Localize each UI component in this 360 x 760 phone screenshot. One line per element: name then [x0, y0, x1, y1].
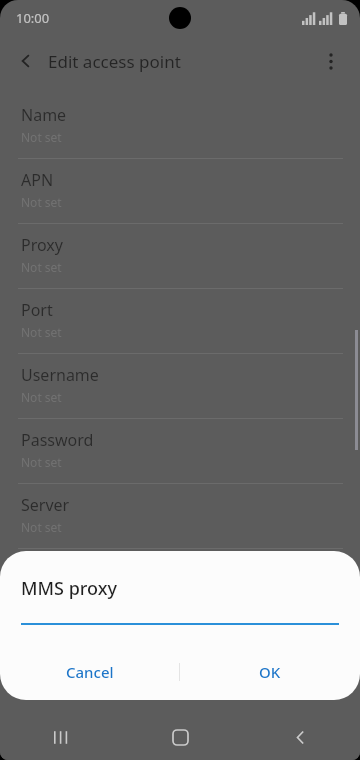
staticText: MMS proxy: [21, 576, 117, 601]
staticText: Server: [21, 494, 70, 516]
button[interactable]: Home: [120, 714, 240, 760]
button[interactable]: Password: [0, 419, 360, 484]
button[interactable]: OK: [180, 650, 360, 694]
button[interactable]: Name: [0, 94, 360, 159]
button[interactable]: Cancel: [0, 650, 179, 694]
staticText: Not set: [21, 389, 62, 405]
staticText: Not set: [21, 584, 62, 600]
staticText: Port: [21, 299, 53, 321]
button[interactable]: Username: [0, 354, 360, 419]
staticText: Not set: [21, 194, 62, 210]
button[interactable]: Proxy: [0, 224, 360, 289]
staticText: MMS port: [21, 624, 95, 646]
staticText: Username: [21, 364, 99, 386]
button[interactable]: Back: [240, 714, 360, 760]
button[interactable]: Navigate up: [9, 44, 43, 78]
staticText: Not set: [21, 454, 62, 470]
staticText: Not set: [21, 324, 62, 340]
button[interactable]: APN: [0, 159, 360, 224]
staticText: 10:00: [16, 9, 50, 27]
staticText: APN: [21, 169, 54, 191]
staticText: Proxy: [21, 234, 63, 256]
button[interactable]: More options: [316, 46, 346, 76]
button[interactable]: Recent apps: [0, 714, 120, 760]
button[interactable]: Port: [0, 289, 360, 354]
button[interactable]: MMS proxy: [0, 549, 360, 614]
staticText: Password: [21, 429, 94, 451]
staticText: Not set: [21, 129, 62, 145]
staticText: Not set: [21, 259, 62, 275]
button[interactable]: Server: [0, 484, 360, 549]
staticText: Edit access point: [48, 50, 181, 73]
staticText: Not set: [21, 519, 62, 535]
staticText: Cancel: [66, 662, 114, 682]
staticText: OK: [259, 662, 281, 682]
staticText: Name: [21, 104, 67, 126]
button[interactable]: MMS port: [0, 614, 360, 679]
